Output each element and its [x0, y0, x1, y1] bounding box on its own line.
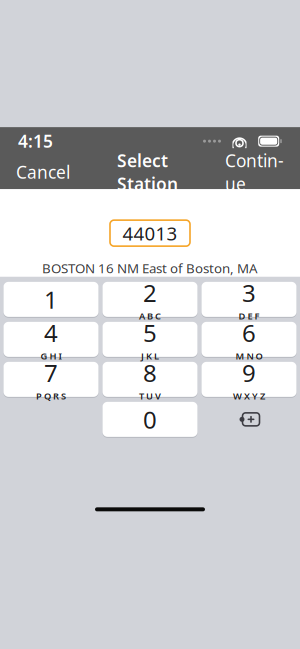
staticText: 44013	[122, 221, 177, 246]
button[interactable]: 6	[201, 322, 296, 357]
button[interactable]: Cancel	[4, 154, 82, 191]
staticText: 4:15	[18, 130, 53, 153]
button[interactable]: Continue	[213, 142, 296, 202]
button[interactable]: 8	[102, 362, 197, 397]
staticText: 5	[143, 317, 157, 349]
staticText: 6	[242, 317, 256, 349]
button[interactable]: 44013	[110, 220, 190, 246]
staticText: P Q R S	[36, 390, 66, 402]
staticText: M N O	[235, 350, 262, 362]
staticText: 8	[143, 357, 157, 389]
button[interactable]: Delete	[201, 402, 296, 437]
staticText: 3	[242, 277, 256, 309]
staticText: 7	[44, 357, 58, 389]
staticText: J K L	[141, 350, 159, 362]
staticText: BOSTON 16 NM East of Boston, MA	[42, 259, 258, 277]
button[interactable]: 1	[3, 282, 98, 317]
staticText: 9	[242, 357, 256, 389]
staticText: D E F	[238, 310, 259, 322]
staticText: T U V	[139, 390, 161, 402]
staticText: 2	[143, 277, 157, 309]
button[interactable]: 9	[201, 362, 296, 397]
button[interactable]: 2	[102, 282, 197, 317]
button[interactable]: 0	[102, 402, 197, 437]
staticText: W X Y Z	[233, 390, 265, 402]
button[interactable]: 4	[3, 322, 98, 357]
button[interactable]: 5	[102, 322, 197, 357]
staticText: G H I	[40, 350, 61, 362]
button[interactable]: 3	[201, 282, 296, 317]
button[interactable]: 7	[3, 362, 98, 397]
staticText: Select Station	[117, 149, 178, 195]
staticText: 4	[44, 317, 58, 349]
staticText: 0	[143, 403, 157, 435]
staticText: A B C	[139, 310, 161, 322]
staticText: Cancel	[16, 161, 70, 184]
staticText: 1	[44, 283, 58, 315]
staticText: Continue	[225, 149, 284, 195]
